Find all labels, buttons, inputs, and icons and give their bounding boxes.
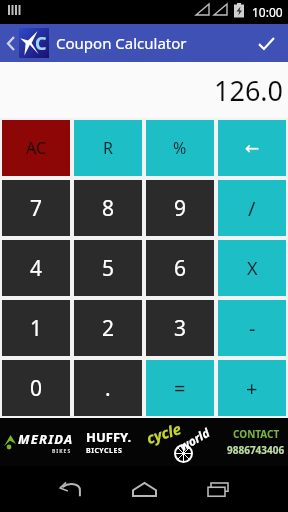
button[interactable]: 8 (74, 180, 142, 236)
staticText: HUFFY. (86, 428, 132, 446)
staticText: 3 (174, 314, 187, 343)
button[interactable]: 1 (2, 300, 70, 356)
button[interactable]: 4 (2, 240, 70, 296)
staticText: BICYCLES (86, 446, 123, 456)
staticText: 5 (102, 254, 115, 283)
button[interactable] (116, 466, 172, 512)
staticText: - (249, 315, 256, 342)
staticText: . (105, 374, 111, 403)
staticText: BIKES (52, 448, 72, 455)
button[interactable]: ← (218, 120, 286, 176)
button[interactable]: MERIDA (0, 418, 288, 466)
button[interactable]: 3 (146, 300, 214, 356)
staticText: MERIDA (18, 430, 74, 448)
staticText: R (103, 137, 113, 159)
staticText: cycle (144, 418, 184, 448)
button[interactable]: 5 (74, 240, 142, 296)
staticText: 10:00 (252, 4, 283, 20)
button[interactable]: C (0, 24, 49, 62)
staticText: / (248, 195, 256, 222)
staticText: X (247, 256, 258, 281)
button[interactable] (244, 24, 288, 62)
button[interactable]: = (146, 360, 214, 416)
staticText: 4 (30, 254, 43, 283)
staticText: AC (26, 137, 47, 159)
staticText: world (176, 424, 213, 454)
button[interactable]: 9 (146, 180, 214, 236)
staticText: 9886743406 (227, 443, 285, 457)
staticText: 126.0 (214, 72, 284, 109)
button[interactable]: - (218, 300, 286, 356)
button[interactable]: % (146, 120, 214, 176)
staticText: 9 (174, 194, 187, 223)
button[interactable]: . (74, 360, 142, 416)
staticText: CONTACT (233, 427, 280, 441)
staticText: % (173, 137, 187, 159)
staticText: 6 (174, 254, 187, 283)
button[interactable]: / (218, 180, 286, 236)
staticText: ← (245, 138, 260, 158)
button[interactable]: 6 (146, 240, 214, 296)
staticText: 1 (30, 314, 43, 343)
staticText: 8 (102, 194, 115, 223)
button[interactable]: 7 (2, 180, 70, 236)
staticText: = (174, 375, 186, 402)
staticText: 2 (102, 314, 115, 343)
button[interactable]: R (74, 120, 142, 176)
staticText: Coupon Calculator (56, 33, 187, 53)
staticText: + (246, 375, 258, 402)
button[interactable]: X (218, 240, 286, 296)
staticText: 7 (30, 194, 43, 223)
staticText: C (35, 31, 47, 56)
staticText: 0 (30, 374, 43, 403)
button[interactable] (42, 466, 98, 512)
button[interactable] (190, 466, 246, 512)
button[interactable]: 2 (74, 300, 142, 356)
button[interactable]: AC (2, 120, 70, 176)
button[interactable]: 0 (2, 360, 70, 416)
button[interactable]: + (218, 360, 286, 416)
